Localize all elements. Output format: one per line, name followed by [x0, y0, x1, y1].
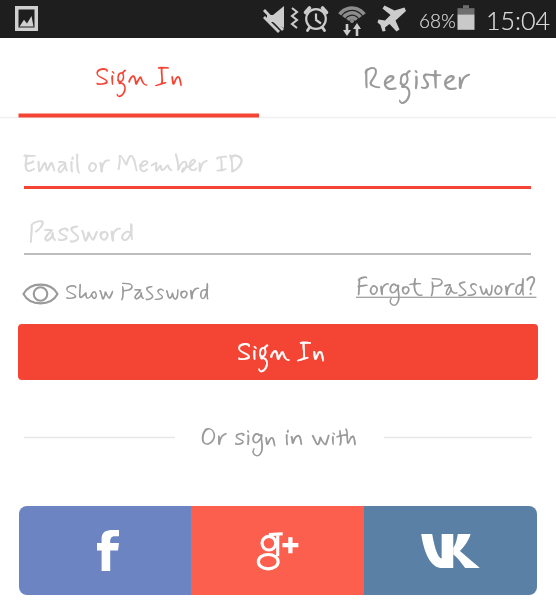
- staticText: 15:04: [486, 5, 551, 35]
- staticText: Password: [28, 216, 135, 251]
- staticText: Register: [363, 59, 472, 101]
- staticText: Forgot Password?: [356, 273, 537, 304]
- button[interactable]: Sign in with VK: [364, 506, 537, 595]
- staticText: Or sign in with: [200, 422, 357, 455]
- button[interactable]: Show password: [22, 279, 210, 309]
- staticText: 68%: [419, 9, 456, 32]
- staticText: Sign In: [237, 336, 325, 370]
- button[interactable]: Sign in with Facebook: [19, 506, 191, 595]
- button[interactable]: Sign in with Google Plus: [191, 506, 364, 595]
- button[interactable]: Sign In: [0, 38, 278, 119]
- other: Show password: [22, 281, 59, 307]
- button[interactable]: Sign In: [18, 324, 538, 380]
- staticText: Sign In: [95, 61, 183, 95]
- staticText: Show Password: [65, 278, 210, 308]
- button[interactable]: Register: [278, 38, 556, 119]
- staticText: Email or Member ID: [22, 149, 245, 182]
- button[interactable]: Forgot Password?: [356, 273, 537, 304]
